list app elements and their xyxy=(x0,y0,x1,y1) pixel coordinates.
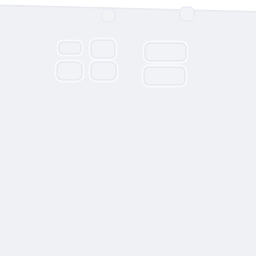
button[interactable]: Item 1 xyxy=(57,40,82,55)
button[interactable]: Item 6 xyxy=(142,65,186,86)
button[interactable]: Search xyxy=(102,9,115,22)
button[interactable]: Item 4 xyxy=(89,60,117,81)
button[interactable]: Item 5 xyxy=(143,41,187,62)
button[interactable]: Settings xyxy=(180,7,194,21)
button[interactable]: Item 2 xyxy=(55,60,83,81)
button[interactable]: Item 3 xyxy=(89,38,116,59)
